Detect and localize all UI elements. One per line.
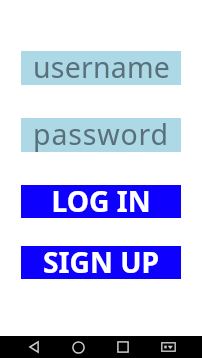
button[interactable]: Recent apps [101,336,145,358]
button[interactable]: LOG IN [21,185,181,218]
staticText: LOG IN [51,182,151,220]
button[interactable]: Hide keyboard [146,336,190,358]
button[interactable]: Home [56,336,100,358]
staticText: username [33,48,171,87]
button[interactable]: username [21,51,181,85]
staticText: password [33,115,169,154]
button[interactable]: password [21,118,181,152]
button[interactable]: SIGN UP [21,246,181,279]
button[interactable]: Back [12,336,56,358]
staticText: SIGN UP [43,243,159,281]
